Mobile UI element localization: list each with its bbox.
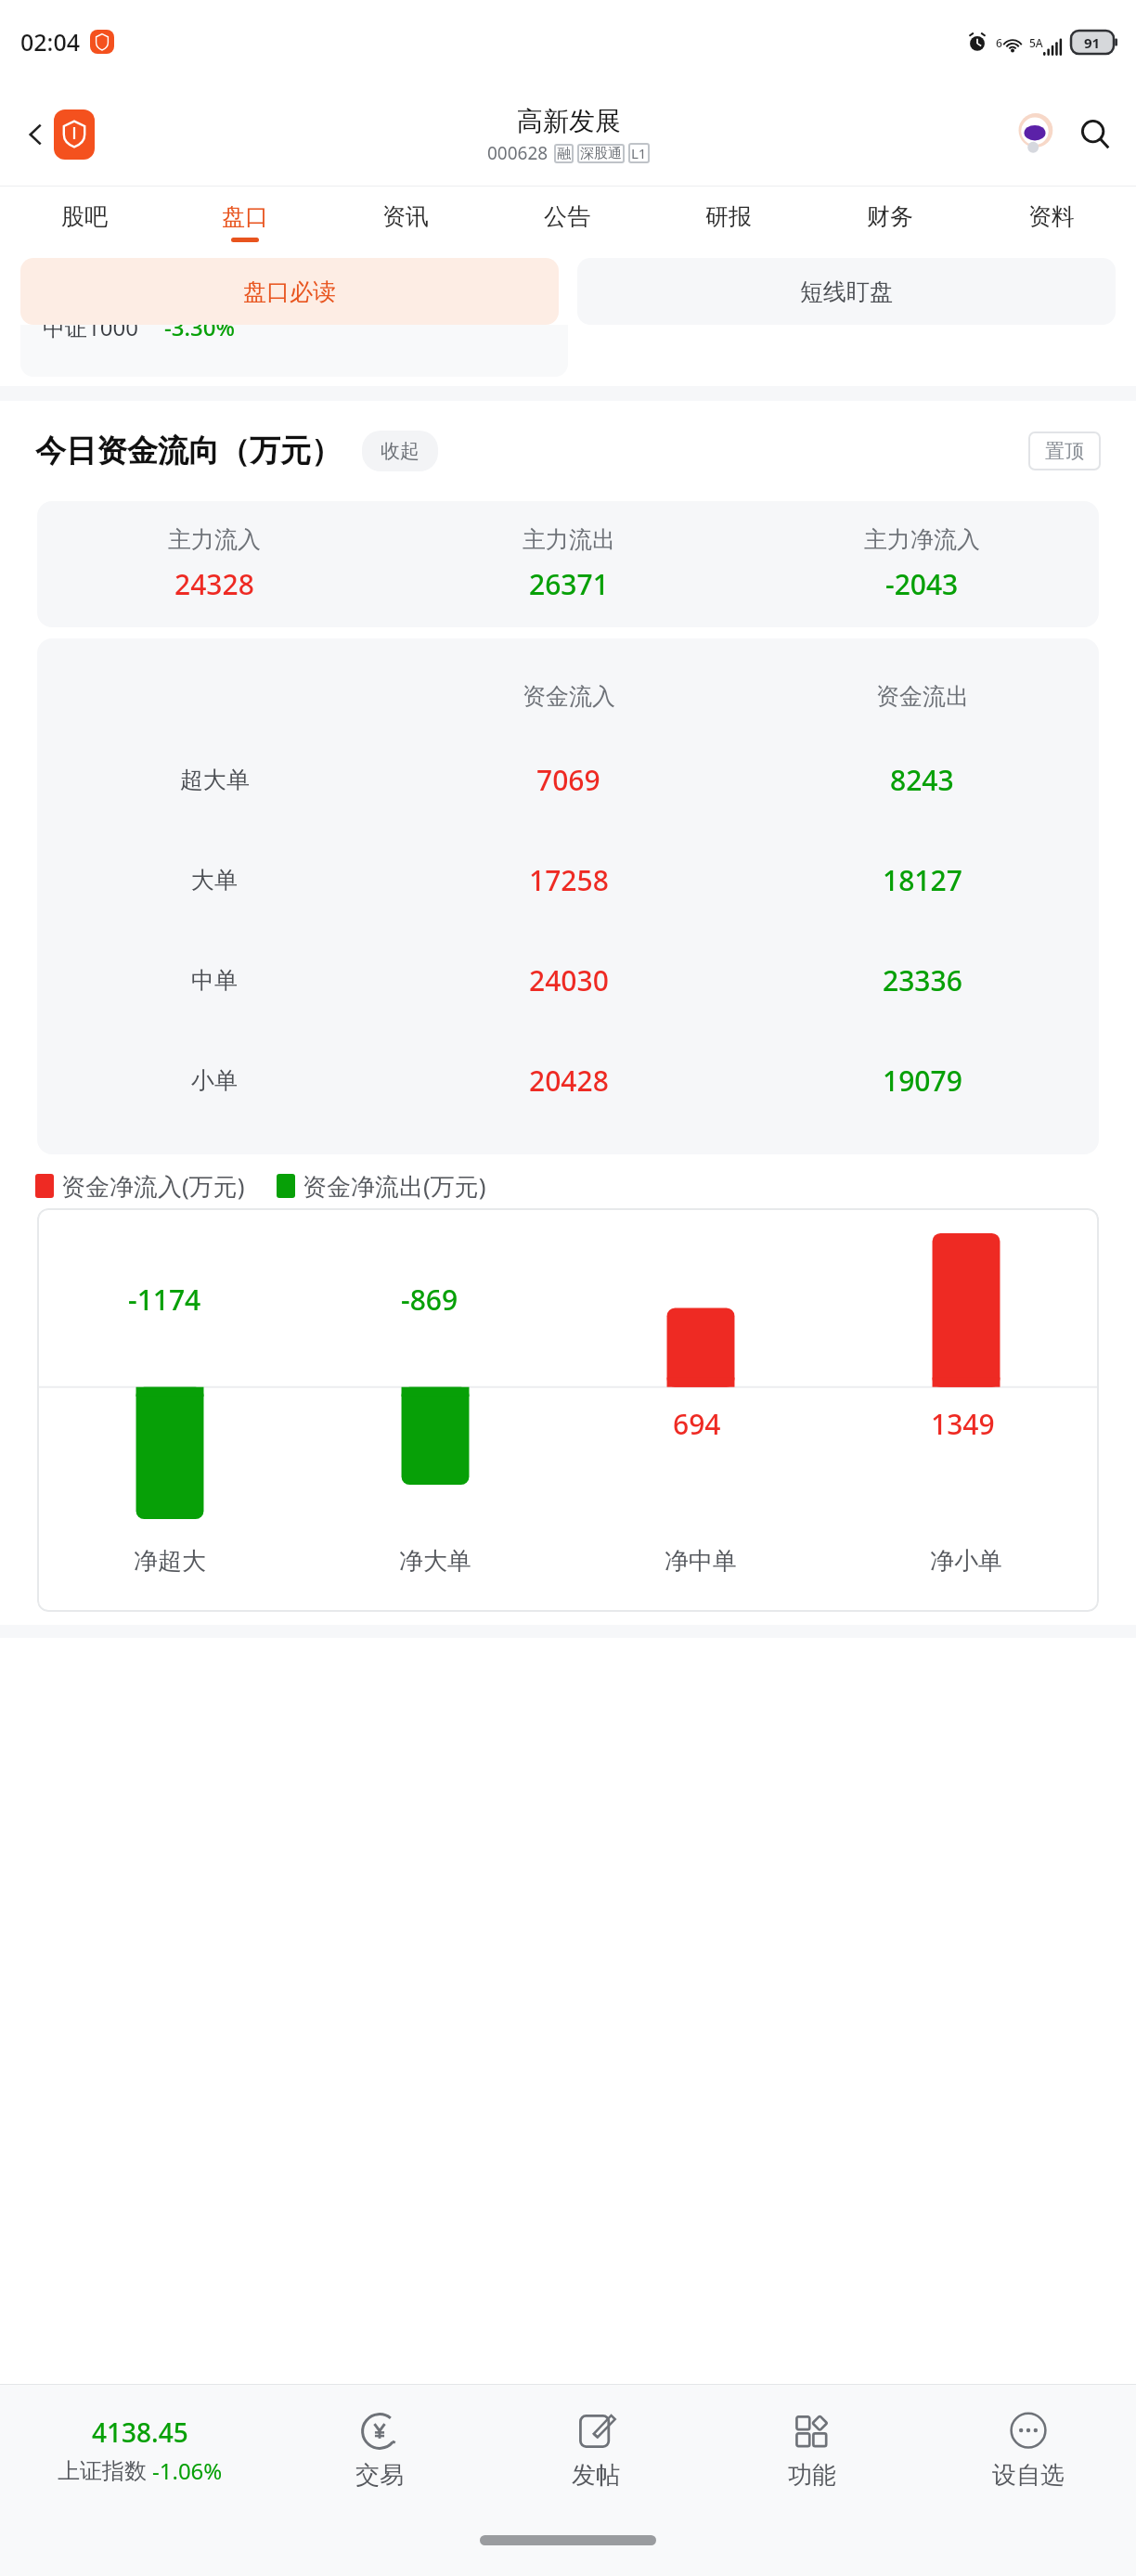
staticText: 净超大: [134, 1546, 206, 1577]
staticText: 20428: [529, 1062, 609, 1100]
staticText: 资金流出: [876, 682, 969, 711]
staticText: 19079: [883, 1062, 962, 1100]
button[interactable]: 股吧: [4, 186, 164, 258]
staticText: 深股通: [580, 145, 622, 162]
staticText: 净中单: [665, 1546, 737, 1577]
button[interactable]: 公告: [486, 186, 648, 258]
staticText: 股吧: [61, 202, 108, 231]
staticText: -1174: [128, 1281, 201, 1319]
button[interactable]: 交易: [271, 2410, 487, 2491]
staticText: -2043: [885, 565, 959, 603]
staticText: 17258: [529, 861, 609, 899]
staticText: 高新发展: [517, 105, 621, 137]
staticText: 净小单: [930, 1546, 1002, 1577]
button[interactable]: Search: [1071, 110, 1119, 159]
staticText: 26371: [529, 565, 609, 603]
staticText: 7069: [536, 761, 600, 799]
staticText: 融: [557, 145, 571, 162]
staticText: 设自选: [992, 2460, 1065, 2491]
staticText: 今日资金流向（万元）: [35, 431, 342, 470]
staticText: 24328: [174, 565, 254, 603]
staticText: 23336: [883, 961, 962, 999]
button[interactable]: 功能: [704, 2410, 920, 2491]
button[interactable]: 设自选: [920, 2410, 1136, 2491]
staticText: -3.30%: [164, 325, 235, 342]
staticText: 5A: [1029, 35, 1043, 50]
staticText: 02:04: [20, 26, 81, 58]
staticText: 交易: [355, 2460, 404, 2491]
staticText: 功能: [788, 2460, 836, 2491]
staticText: 资金流入: [523, 682, 615, 711]
staticText: 资金净流出(万元): [303, 1169, 486, 1203]
button[interactable]: 发帖: [487, 2410, 704, 2491]
staticText: 中单: [191, 966, 238, 995]
staticText: 大单: [191, 866, 238, 895]
button[interactable]: 4138.45: [0, 2415, 271, 2486]
staticText: 资料: [1028, 202, 1075, 231]
staticText: 收起: [381, 439, 420, 463]
staticText: -1.06%: [152, 2455, 223, 2486]
staticText: 公告: [544, 202, 590, 231]
staticText: 18127: [883, 861, 962, 899]
button[interactable]: 资讯: [325, 186, 486, 258]
button[interactable]: 主力流入: [37, 501, 1099, 627]
staticText: 盘口必读: [243, 277, 336, 306]
staticText: 研报: [705, 202, 752, 231]
staticText: 资金净流入(万元): [61, 1169, 245, 1203]
button[interactable]: 置顶: [1028, 431, 1101, 470]
staticText: 主力净流入: [864, 525, 980, 554]
button[interactable]: 盘口必读: [20, 258, 559, 325]
staticText: 置顶: [1045, 439, 1084, 463]
button[interactable]: 财务: [809, 186, 971, 258]
button[interactable]: 资金流入: [37, 638, 1099, 1154]
staticText: 000628: [487, 141, 549, 165]
staticText: 主力流出: [523, 525, 615, 554]
button[interactable]: App logo: [54, 109, 95, 160]
button[interactable]: 盘口: [164, 186, 325, 258]
button[interactable]: 资料: [971, 186, 1132, 258]
button[interactable]: 收起: [362, 431, 438, 471]
staticText: 24030: [529, 961, 609, 999]
button[interactable]: 短线盯盘: [577, 258, 1116, 325]
staticText: 资讯: [382, 202, 429, 231]
staticText: 短线盯盘: [800, 277, 893, 306]
button[interactable]: 研报: [648, 186, 809, 258]
button[interactable]: Assistant: [1012, 111, 1058, 158]
staticText: 694: [673, 1405, 721, 1443]
staticText: 主力流入: [168, 525, 261, 554]
staticText: 净大单: [399, 1546, 471, 1577]
button[interactable]: -1174: [37, 1208, 1099, 1612]
staticText: 财务: [867, 202, 913, 231]
staticText: 6: [996, 35, 1002, 50]
staticText: 小单: [191, 1066, 238, 1095]
staticText: 发帖: [572, 2460, 620, 2491]
button[interactable]: Back: [13, 115, 59, 154]
staticText: 上证指数: [58, 2457, 147, 2485]
staticText: 1349: [931, 1405, 995, 1443]
staticText: 8243: [890, 761, 954, 799]
staticText: 盘口: [222, 202, 268, 231]
staticText: 超大单: [180, 766, 250, 794]
staticText: 91: [1084, 33, 1101, 52]
staticText: -869: [401, 1281, 458, 1319]
staticText: L1: [631, 144, 647, 162]
staticText: 4138.45: [92, 2415, 188, 2450]
staticText: 中证1000: [43, 325, 138, 342]
